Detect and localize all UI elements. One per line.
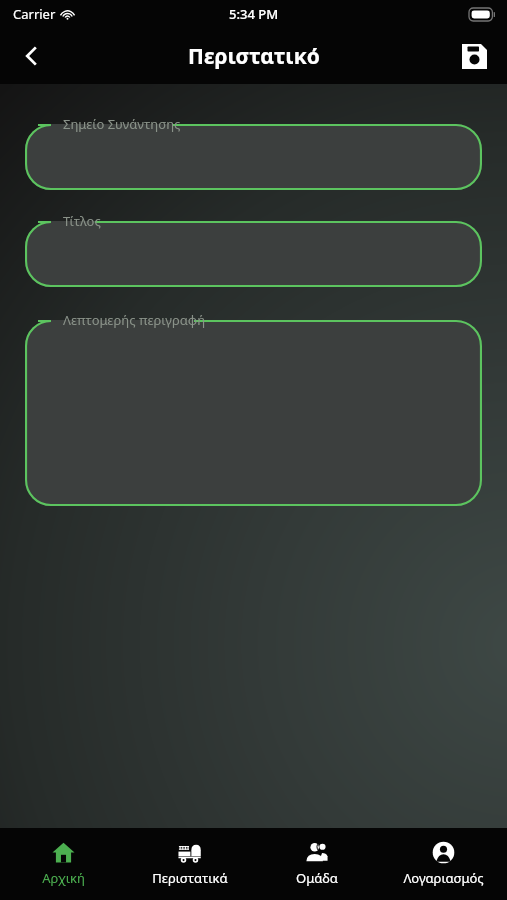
staticText: Λογαριασμός [403, 869, 484, 887]
staticText: Λεπτομερής περιγραφή [63, 311, 206, 329]
button[interactable] [25, 221, 482, 287]
staticText: Carrier [13, 5, 56, 23]
staticText: Ομάδα [296, 869, 338, 887]
button[interactable]: Λογαριασμός [380, 828, 507, 900]
button[interactable]: Ομάδα [253, 828, 380, 900]
button[interactable]: Αρχική [0, 828, 126, 900]
staticText: 5:34 PM [229, 5, 279, 23]
button[interactable] [25, 320, 482, 506]
staticText: Τίτλος [63, 212, 101, 230]
staticText: Αρχική [42, 869, 85, 887]
staticText: Περιστατικά [152, 869, 228, 887]
button[interactable]: Save [450, 32, 498, 80]
staticText: Σημείο Συνάντησης [63, 115, 181, 133]
button[interactable] [25, 124, 482, 190]
button[interactable]: Περιστατικά [126, 828, 253, 900]
button[interactable]: Back [8, 32, 56, 80]
staticText: Περιστατικό [188, 42, 320, 71]
